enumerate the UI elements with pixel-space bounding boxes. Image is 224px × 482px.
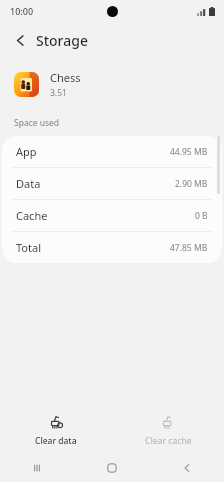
staticText: Clear data (35, 435, 77, 447)
button[interactable]: Clear cache (112, 410, 224, 451)
button[interactable]: App (2, 136, 222, 167)
staticText: Cache (16, 208, 48, 223)
button[interactable]: Recent apps (0, 454, 74, 482)
staticText: Data (16, 176, 41, 191)
staticText: 3.51 (50, 87, 67, 99)
staticText: Space used (14, 117, 60, 129)
button[interactable]: Data (2, 168, 222, 199)
button[interactable]: Home (74, 454, 149, 482)
staticText: Total (16, 240, 41, 255)
button[interactable]: Chess (0, 58, 224, 110)
staticText: 2.90 MB (175, 178, 208, 190)
staticText: App (16, 144, 37, 159)
staticText: 10:00 (10, 5, 34, 17)
staticText: Storage (36, 31, 88, 50)
staticText: 0 B (195, 210, 208, 222)
staticText: 47.85 MB (170, 242, 208, 254)
button[interactable]: Back (149, 454, 224, 482)
button[interactable]: Total (2, 232, 222, 263)
other: Clear data (48, 414, 64, 430)
other: Clear cache (160, 414, 176, 430)
staticText: Clear cache (145, 435, 192, 447)
staticText: Chess (50, 70, 81, 85)
button[interactable]: Clear data (0, 410, 112, 451)
staticText: 44.95 MB (170, 146, 208, 158)
button[interactable]: Back (8, 28, 32, 52)
button[interactable]: Cache (2, 200, 222, 231)
